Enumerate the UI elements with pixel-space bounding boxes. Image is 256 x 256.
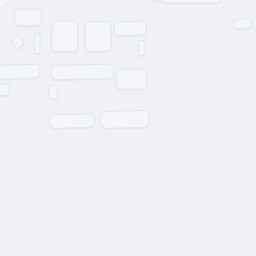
button[interactable]: Card 6 (114, 22, 146, 35)
button[interactable]: Card 2 (13, 37, 22, 47)
button[interactable]: Card 9 (151, 0, 160, 1)
button[interactable]: Card 18 (0, 0, 8, 7)
button[interactable]: Card 12 (51, 65, 113, 79)
button[interactable]: Card 4 (52, 21, 78, 52)
button[interactable]: Card 14 (0, 84, 9, 95)
button[interactable]: Card 3 (34, 33, 40, 53)
button[interactable]: Card 13 (116, 69, 147, 89)
button[interactable]: Card 17 (100, 111, 149, 128)
button[interactable]: Card 11 (0, 65, 40, 79)
button[interactable]: Card 16 (49, 114, 95, 128)
button[interactable]: Card 7 (139, 41, 145, 56)
button[interactable]: Card 8 (161, 0, 222, 3)
button[interactable]: Card 5 (85, 22, 111, 51)
button[interactable]: Card 10 (234, 19, 251, 28)
button[interactable]: Card 1 (14, 9, 41, 26)
button[interactable]: Card 15 (49, 85, 57, 99)
